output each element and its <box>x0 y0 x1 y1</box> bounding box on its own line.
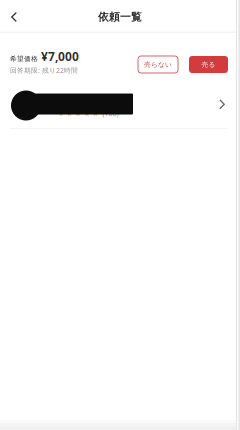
staticText: 売らない <box>144 60 172 69</box>
staticText: ¥7,000 <box>41 48 79 64</box>
button[interactable]: ¥7,000 の依頼を開く <box>0 88 240 130</box>
button[interactable]: Back <box>2 0 26 31</box>
staticText: (100) <box>102 109 118 118</box>
staticText: 売る <box>201 60 215 69</box>
button[interactable]: 売らない <box>138 56 178 73</box>
staticText: 希望価格 <box>10 55 38 63</box>
staticText: 依頼一覧 <box>98 10 142 23</box>
button[interactable]: 売る <box>189 56 228 73</box>
staticText: 回答期限: 残り22時間 <box>10 66 78 75</box>
